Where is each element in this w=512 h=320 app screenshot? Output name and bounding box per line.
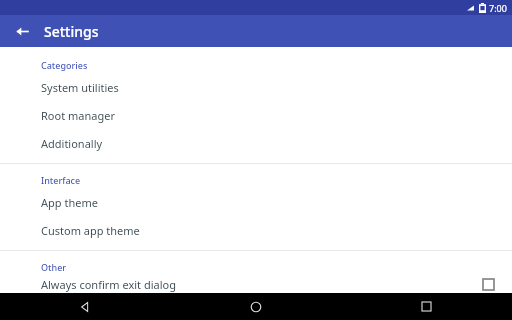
button[interactable]: Custom app theme	[0, 216, 512, 244]
button[interactable]: Always confirm exit dialog	[0, 275, 512, 293]
staticText: System utilities	[41, 80, 119, 95]
button[interactable]: Home	[170, 293, 341, 320]
staticText: Settings	[44, 22, 99, 41]
staticText: Categories	[41, 59, 88, 71]
staticText: App theme	[41, 195, 98, 210]
button[interactable]: System utilities	[0, 73, 512, 101]
staticText: Root manager	[41, 108, 115, 123]
staticText: Interface	[41, 174, 81, 186]
button[interactable]: Additionally	[0, 129, 512, 157]
button[interactable]: Root manager	[0, 101, 512, 129]
staticText: Always confirm exit dialog	[41, 277, 483, 292]
staticText: Additionally	[41, 136, 103, 151]
button[interactable]: Back	[10, 19, 34, 43]
staticText: Other	[41, 261, 67, 273]
button[interactable]: Back	[0, 293, 170, 320]
button[interactable]: Recent apps	[341, 293, 512, 320]
staticText: Custom app theme	[41, 223, 140, 238]
button[interactable]: App theme	[0, 188, 512, 216]
staticText: 7:00	[489, 2, 507, 14]
